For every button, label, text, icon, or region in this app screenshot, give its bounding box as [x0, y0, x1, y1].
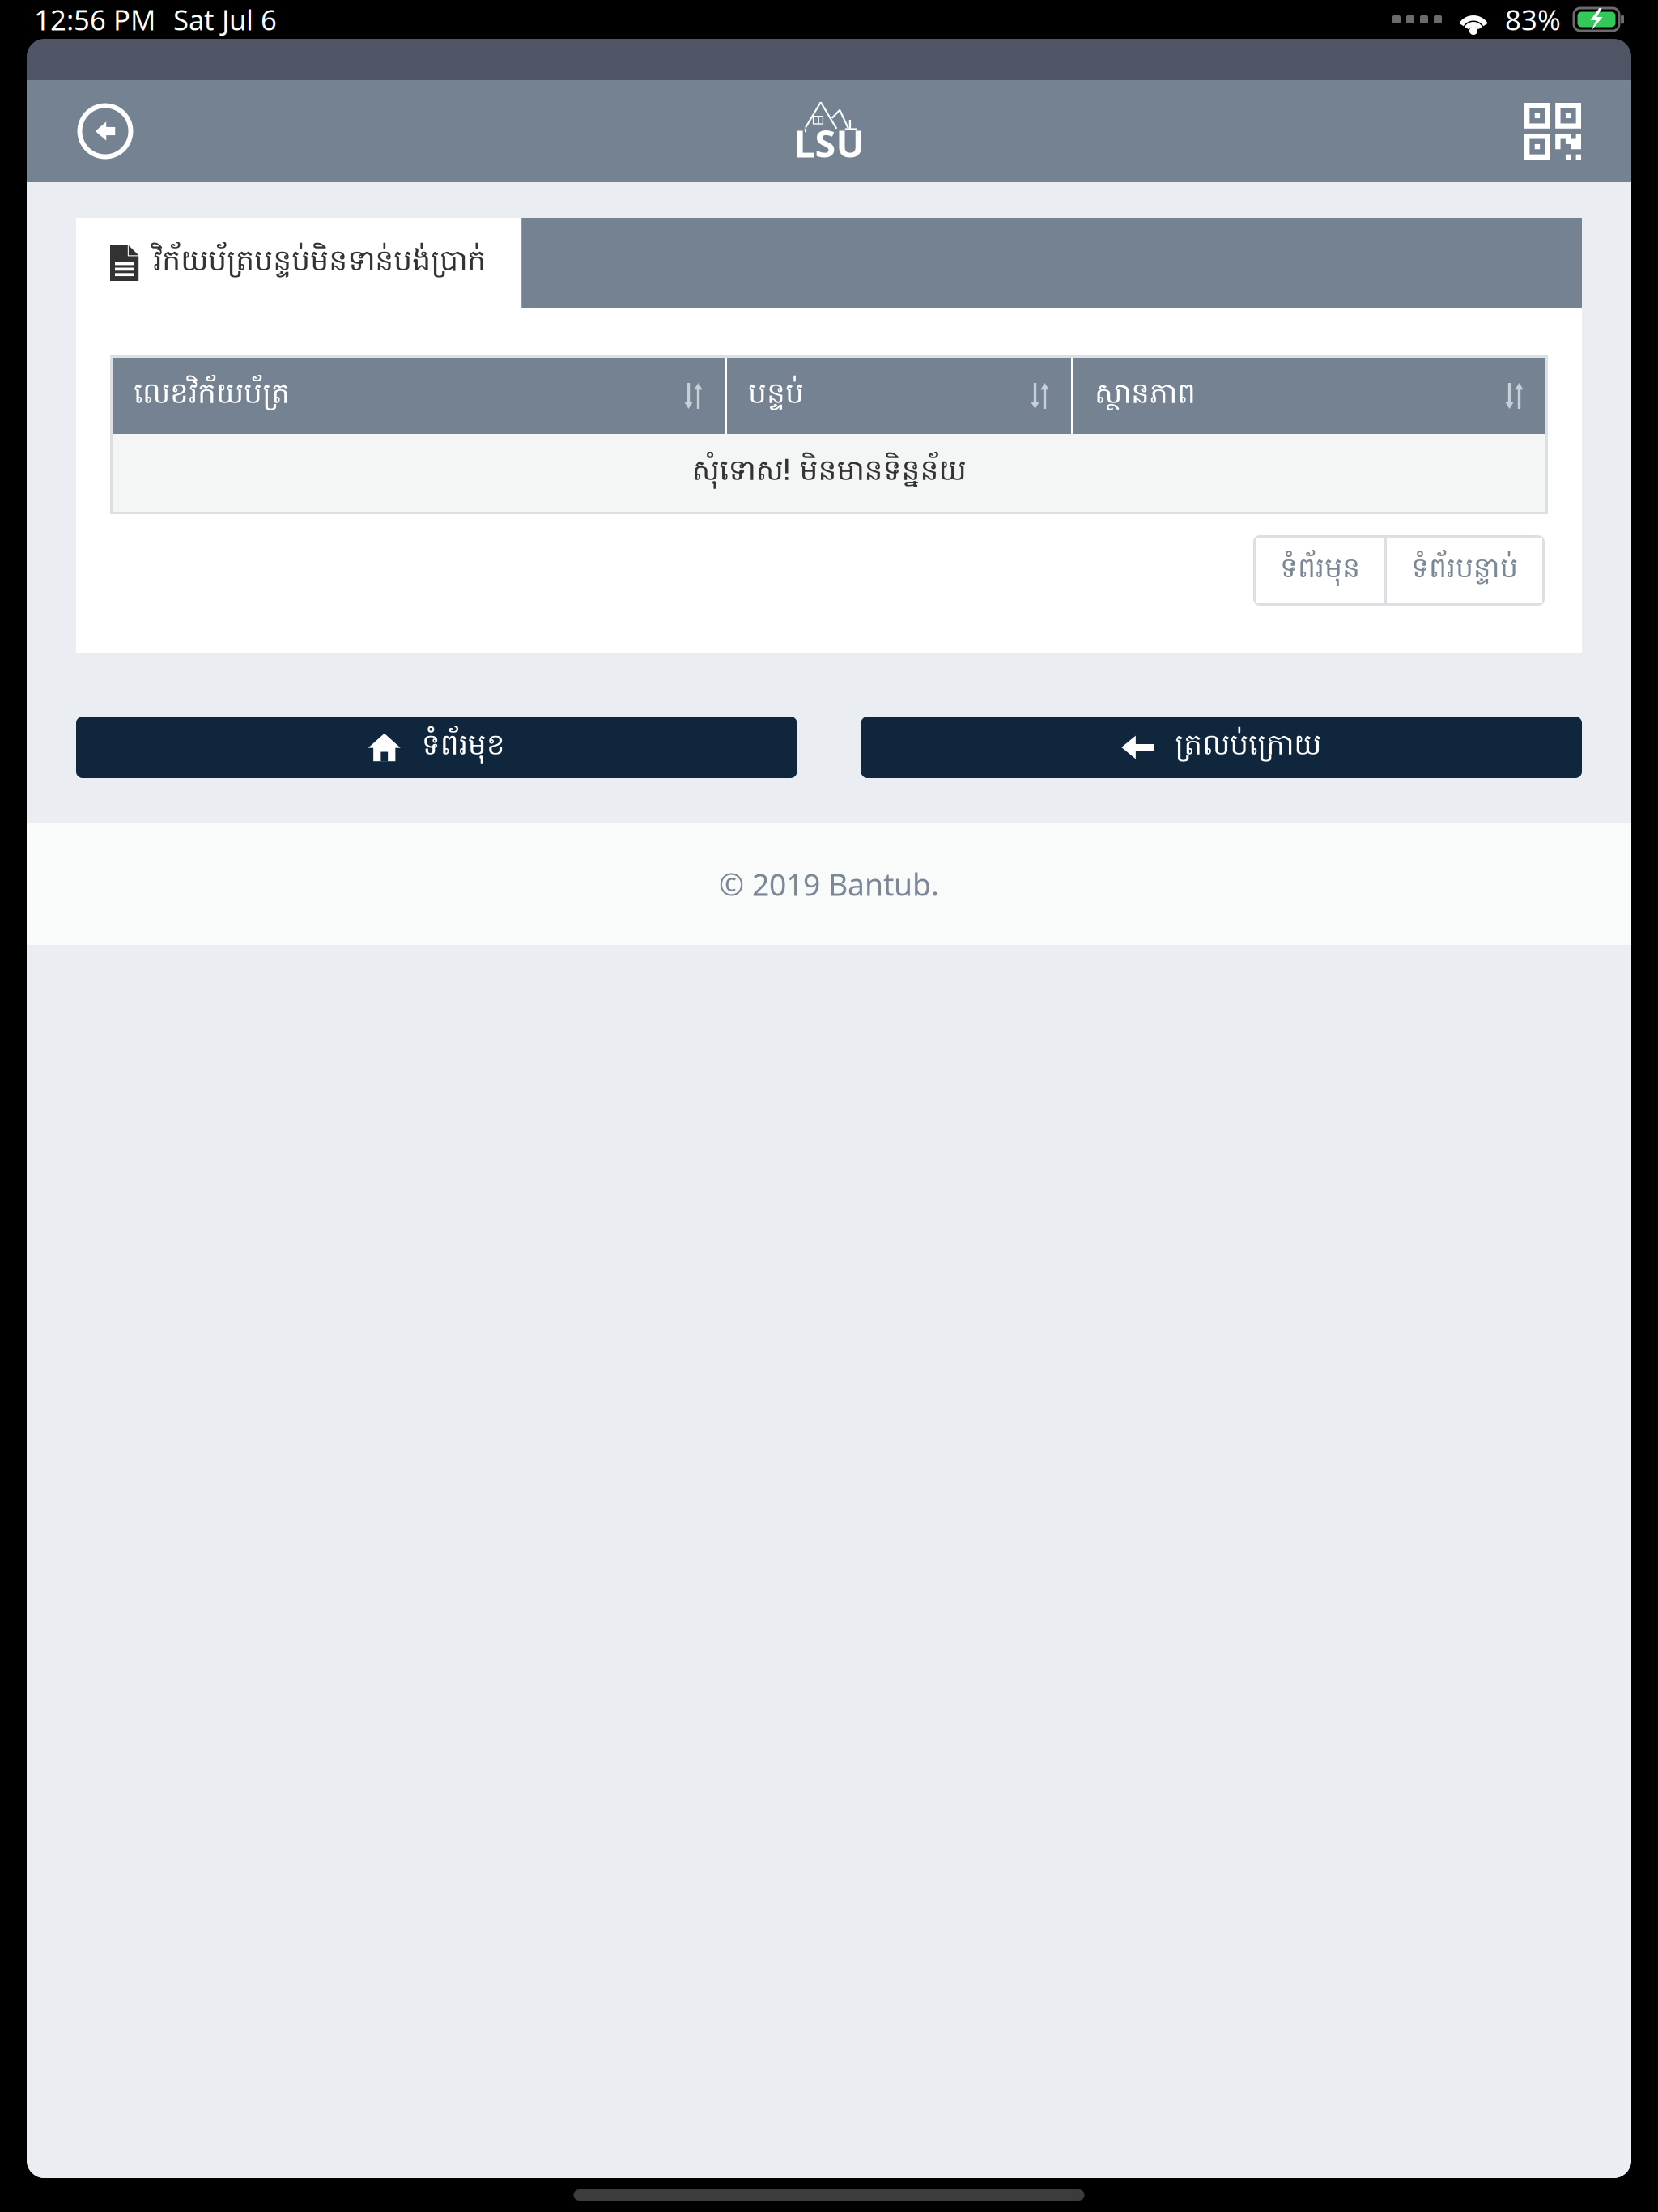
staticText: ទំព័របន្ទាប់ [1411, 550, 1518, 591]
staticText: Sat Jul 6 [173, 1, 277, 38]
button[interactable]: Scan QR code [1494, 80, 1611, 182]
staticText: បន្ទប់ [748, 375, 804, 417]
button[interactable]: ត្រលប់ក្រោយ [861, 717, 1582, 778]
button[interactable]: Back [47, 80, 164, 182]
staticText: 83% [1505, 1, 1561, 38]
button[interactable]: ទំព័របន្ទាប់ [1387, 538, 1542, 603]
staticText: ទំព័រមុខ [422, 726, 505, 769]
staticText: សុំទោស! មិនមានទិន្នន័យ [692, 451, 966, 494]
staticText: ទំព័រមុន [1280, 550, 1360, 591]
staticText: លេខវិក័យប័ត្រ [134, 375, 290, 417]
button[interactable]: ទំព័រមុន [1256, 538, 1384, 603]
staticText: 12:56 PM [34, 1, 155, 38]
staticText: ត្រលប់ក្រោយ [1175, 726, 1321, 769]
staticText: LSU [794, 118, 864, 168]
staticText: វិក័យប័ត្របន្ទប់មិនទាន់បង់ប្រាក់ [153, 242, 486, 284]
staticText: © 2019 Bantub. [719, 864, 939, 904]
staticText: ស្ថានភាព [1095, 375, 1196, 417]
button[interactable]: ទំព័រមុខ [76, 717, 797, 778]
